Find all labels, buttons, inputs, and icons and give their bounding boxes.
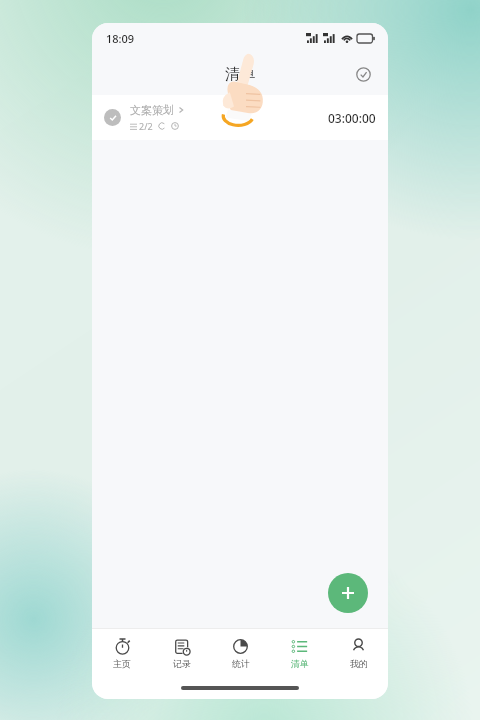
button[interactable]: 我的 — [329, 629, 388, 677]
button[interactable]: 清单 — [270, 629, 329, 677]
button[interactable]: 主页 — [92, 629, 152, 677]
staticText: 清单 — [291, 658, 309, 669]
staticText: 主页 — [113, 658, 131, 669]
staticText: 2/2 — [139, 120, 153, 132]
staticText: 清单 — [225, 65, 255, 84]
staticText: 03:00:00 — [328, 110, 376, 126]
staticText: 记录 — [173, 658, 191, 669]
staticText: 我的 — [350, 658, 368, 669]
button[interactable]: 文案策划 — [92, 95, 388, 140]
button[interactable]: 统计 — [211, 629, 270, 677]
staticText: 文案策划 — [130, 103, 174, 117]
staticText: 统计 — [232, 658, 250, 669]
staticText: 18:09 — [106, 31, 135, 46]
button[interactable]: Add — [328, 573, 368, 613]
button[interactable]: Complete all — [348, 59, 378, 89]
button[interactable]: 记录 — [152, 629, 211, 677]
